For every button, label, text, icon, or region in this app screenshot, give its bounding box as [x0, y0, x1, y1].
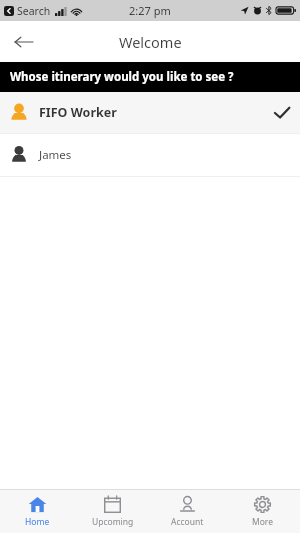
- staticText: More: [252, 516, 273, 528]
- staticText: James: [39, 147, 72, 163]
- staticText: 2:27 pm: [129, 3, 171, 18]
- button[interactable]: More: [225, 490, 300, 533]
- staticText: Account: [171, 516, 204, 528]
- button[interactable]: Upcoming: [75, 490, 150, 533]
- staticText: Welcome: [119, 32, 182, 52]
- button[interactable]: FIFO Worker: [0, 92, 300, 133]
- button[interactable]: Home: [0, 490, 75, 533]
- staticText: Home: [25, 516, 50, 528]
- button[interactable]: Back: [6, 25, 40, 59]
- button[interactable]: Account: [150, 490, 225, 533]
- staticText: Upcoming: [92, 516, 134, 528]
- staticText: Search: [17, 4, 51, 18]
- staticText: Whose itinerary would you like to see ?: [10, 69, 234, 85]
- staticText: FIFO Worker: [39, 104, 117, 121]
- button[interactable]: James: [0, 134, 300, 176]
